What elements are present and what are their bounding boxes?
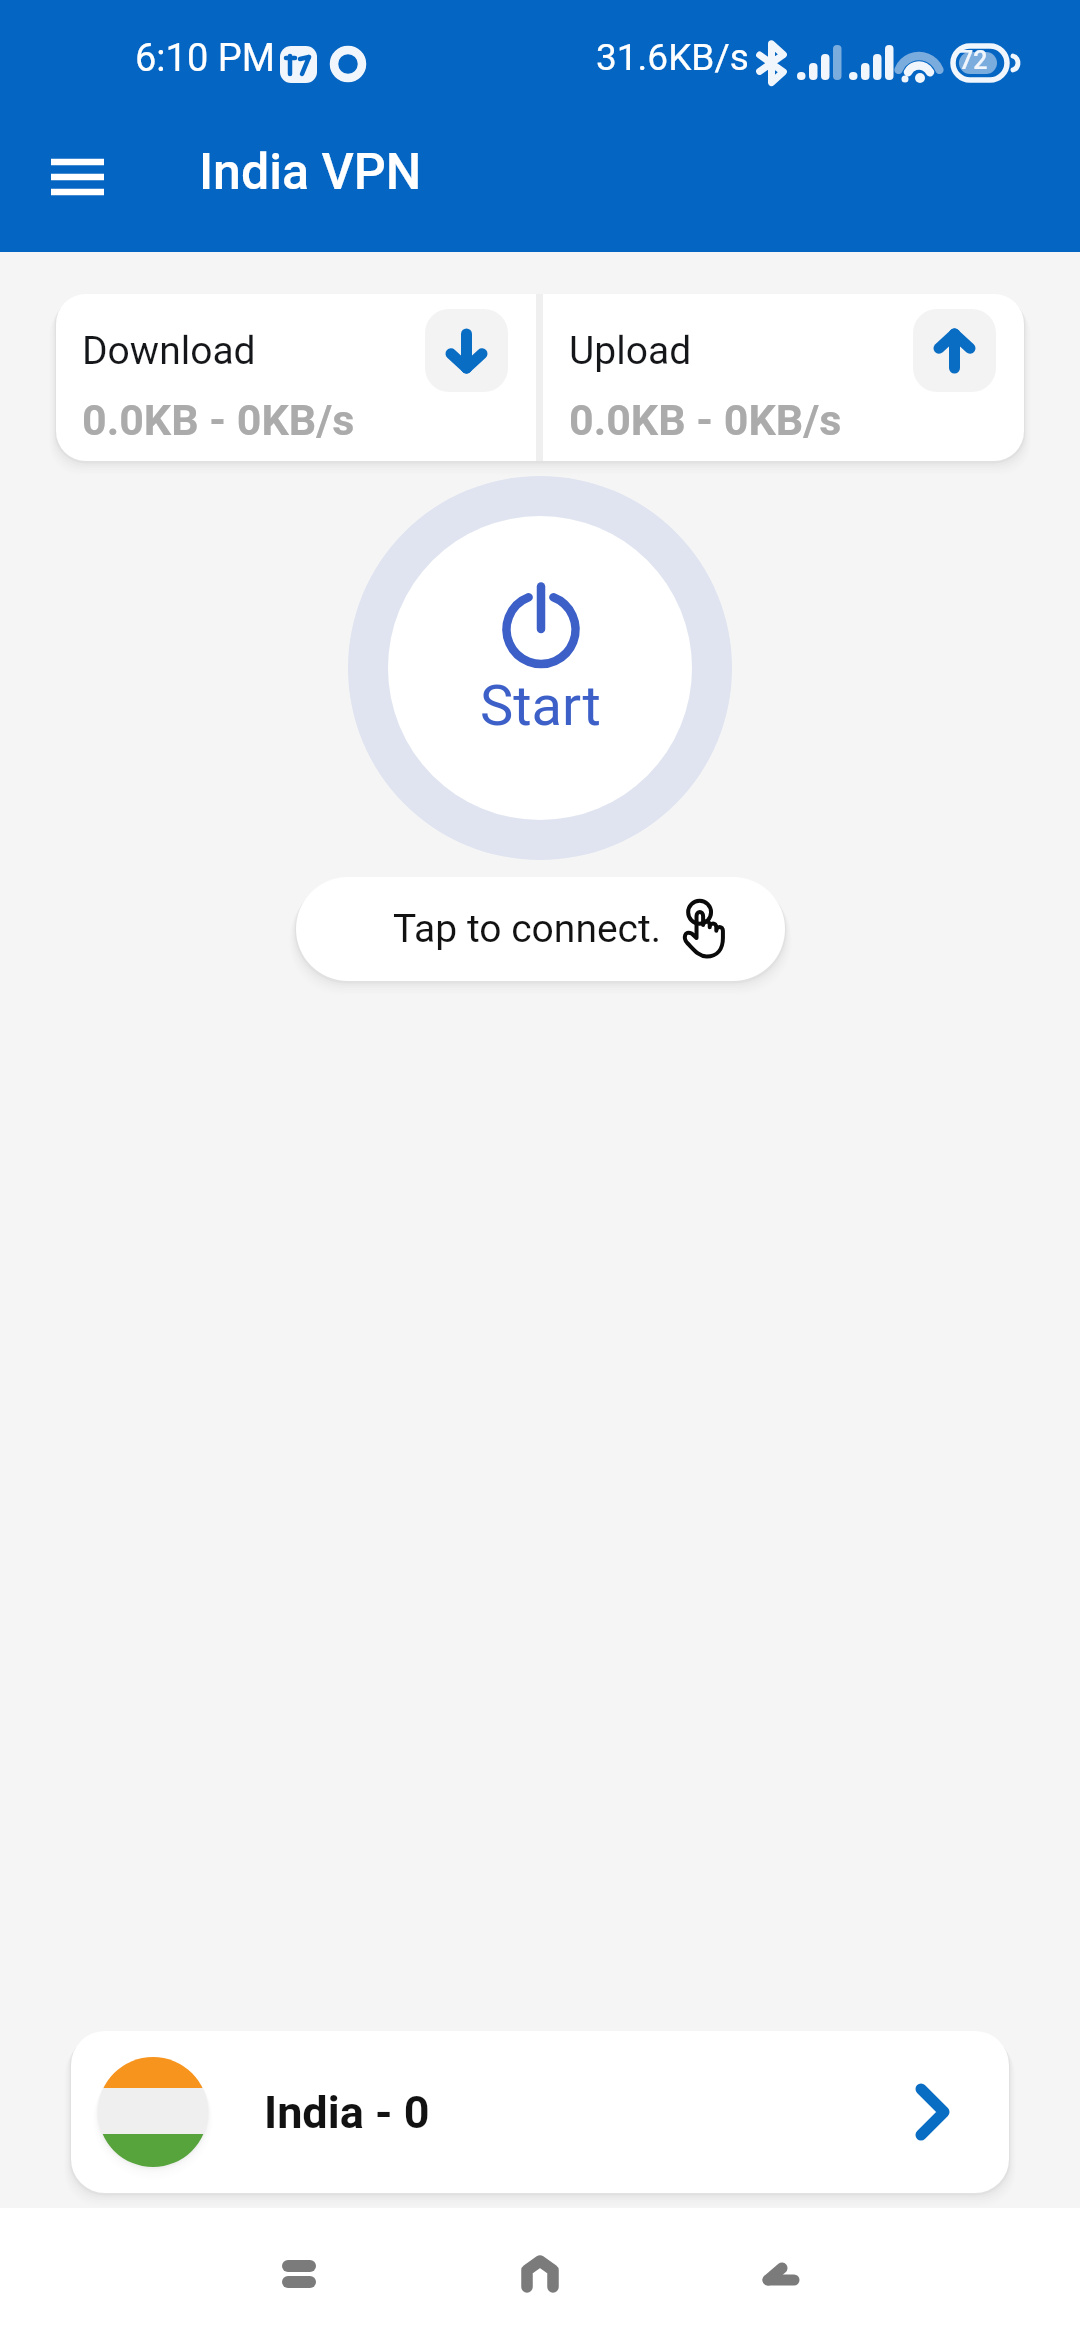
staticText: India - 0 [264,2086,430,2139]
staticText: Tap to connect. [393,906,662,952]
staticText: Upload [569,328,692,374]
button[interactable]: Download [56,294,536,461]
button[interactable]: Tap to connect. [296,877,785,981]
button[interactable]: Start VPN [348,476,732,860]
button[interactable]: Recent apps [239,2224,359,2324]
staticText: Download [82,328,256,374]
button[interactable]: Upload [543,294,1024,461]
button[interactable]: Home [480,2224,600,2324]
staticText: 31.6KB/s [596,36,749,79]
staticText: India VPN [199,143,422,202]
button[interactable]: Back [720,2224,840,2324]
staticText: 6:10 PM [135,36,275,81]
staticText: 0.0KB - 0KB/s [569,395,842,445]
staticText: 72 [959,46,988,75]
staticText: 0.0KB - 0KB/s [82,395,355,445]
button[interactable]: India - 0 [71,2031,1009,2193]
staticText: Start [480,673,601,739]
button[interactable]: Open navigation menu [27,127,127,227]
